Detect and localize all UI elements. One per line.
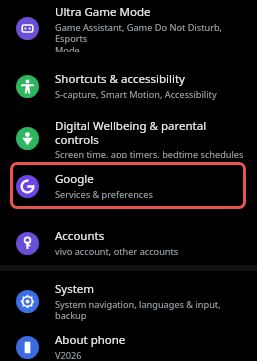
staticText: System bbox=[55, 281, 95, 297]
button[interactable]: Google bbox=[0, 166, 257, 206]
staticText: Digital Wellbeing & parental controls bbox=[55, 118, 247, 147]
button[interactable]: Ultra Game Mode bbox=[0, 4, 257, 52]
staticText: Services & preferences bbox=[55, 188, 153, 201]
staticText: Game Assistant, Game Do Not Disturb, Esp… bbox=[55, 21, 247, 52]
button[interactable]: Accounts bbox=[0, 223, 257, 263]
button[interactable]: System bbox=[0, 281, 257, 321]
staticText: S-capture, Smart Motion, Accessibility bbox=[55, 88, 217, 101]
staticText: Ultra Game Mode bbox=[55, 4, 151, 20]
staticText: Google bbox=[55, 171, 94, 187]
button[interactable]: About phone bbox=[0, 327, 257, 361]
staticText: System navigation, languages & input, ba… bbox=[55, 298, 247, 321]
button[interactable]: Digital Wellbeing & parental controls bbox=[0, 118, 257, 158]
staticText: Screen time, app timers, bedtime schedul… bbox=[55, 148, 244, 158]
staticText: vivo account, other accounts bbox=[55, 245, 179, 258]
button[interactable]: Shortcuts & accessibility bbox=[0, 66, 257, 106]
staticText: About phone bbox=[55, 332, 126, 348]
staticText: Accounts bbox=[55, 228, 105, 244]
staticText: Shortcuts & accessibility bbox=[55, 71, 185, 87]
staticText: V2026 bbox=[55, 349, 82, 361]
